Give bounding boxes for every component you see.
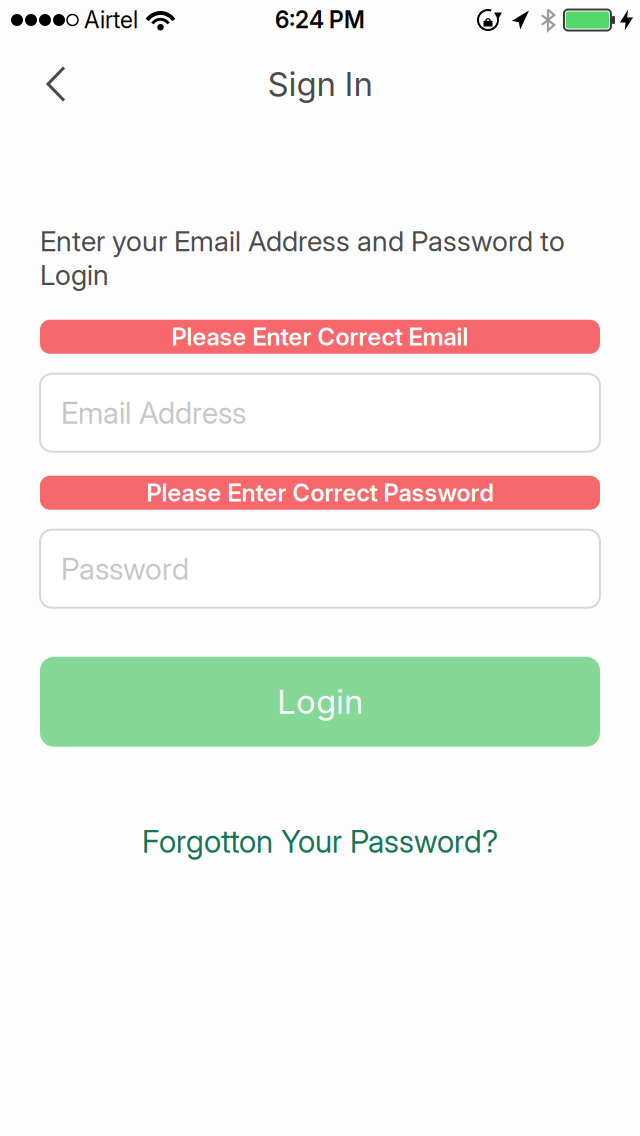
button[interactable]: Email Address <box>40 374 600 452</box>
staticText: Please Enter Correct Email <box>171 322 468 351</box>
staticText: Please Enter Correct Password <box>146 478 493 507</box>
staticText: 6:24 PM <box>275 6 365 34</box>
button[interactable]: Login <box>40 657 600 747</box>
staticText: Password <box>61 551 189 587</box>
button[interactable]: Forgotton Your Password? <box>142 823 498 860</box>
button[interactable]: Back <box>0 61 88 106</box>
button[interactable]: Password <box>40 530 600 608</box>
staticText: Airtel <box>84 6 138 34</box>
staticText: Email Address <box>61 395 246 431</box>
staticText: Forgotton Your Password? <box>142 823 498 860</box>
staticText: Sign In <box>267 64 372 104</box>
staticText: Login <box>277 682 363 722</box>
staticText: Enter your Email Address and Password to… <box>40 224 565 292</box>
